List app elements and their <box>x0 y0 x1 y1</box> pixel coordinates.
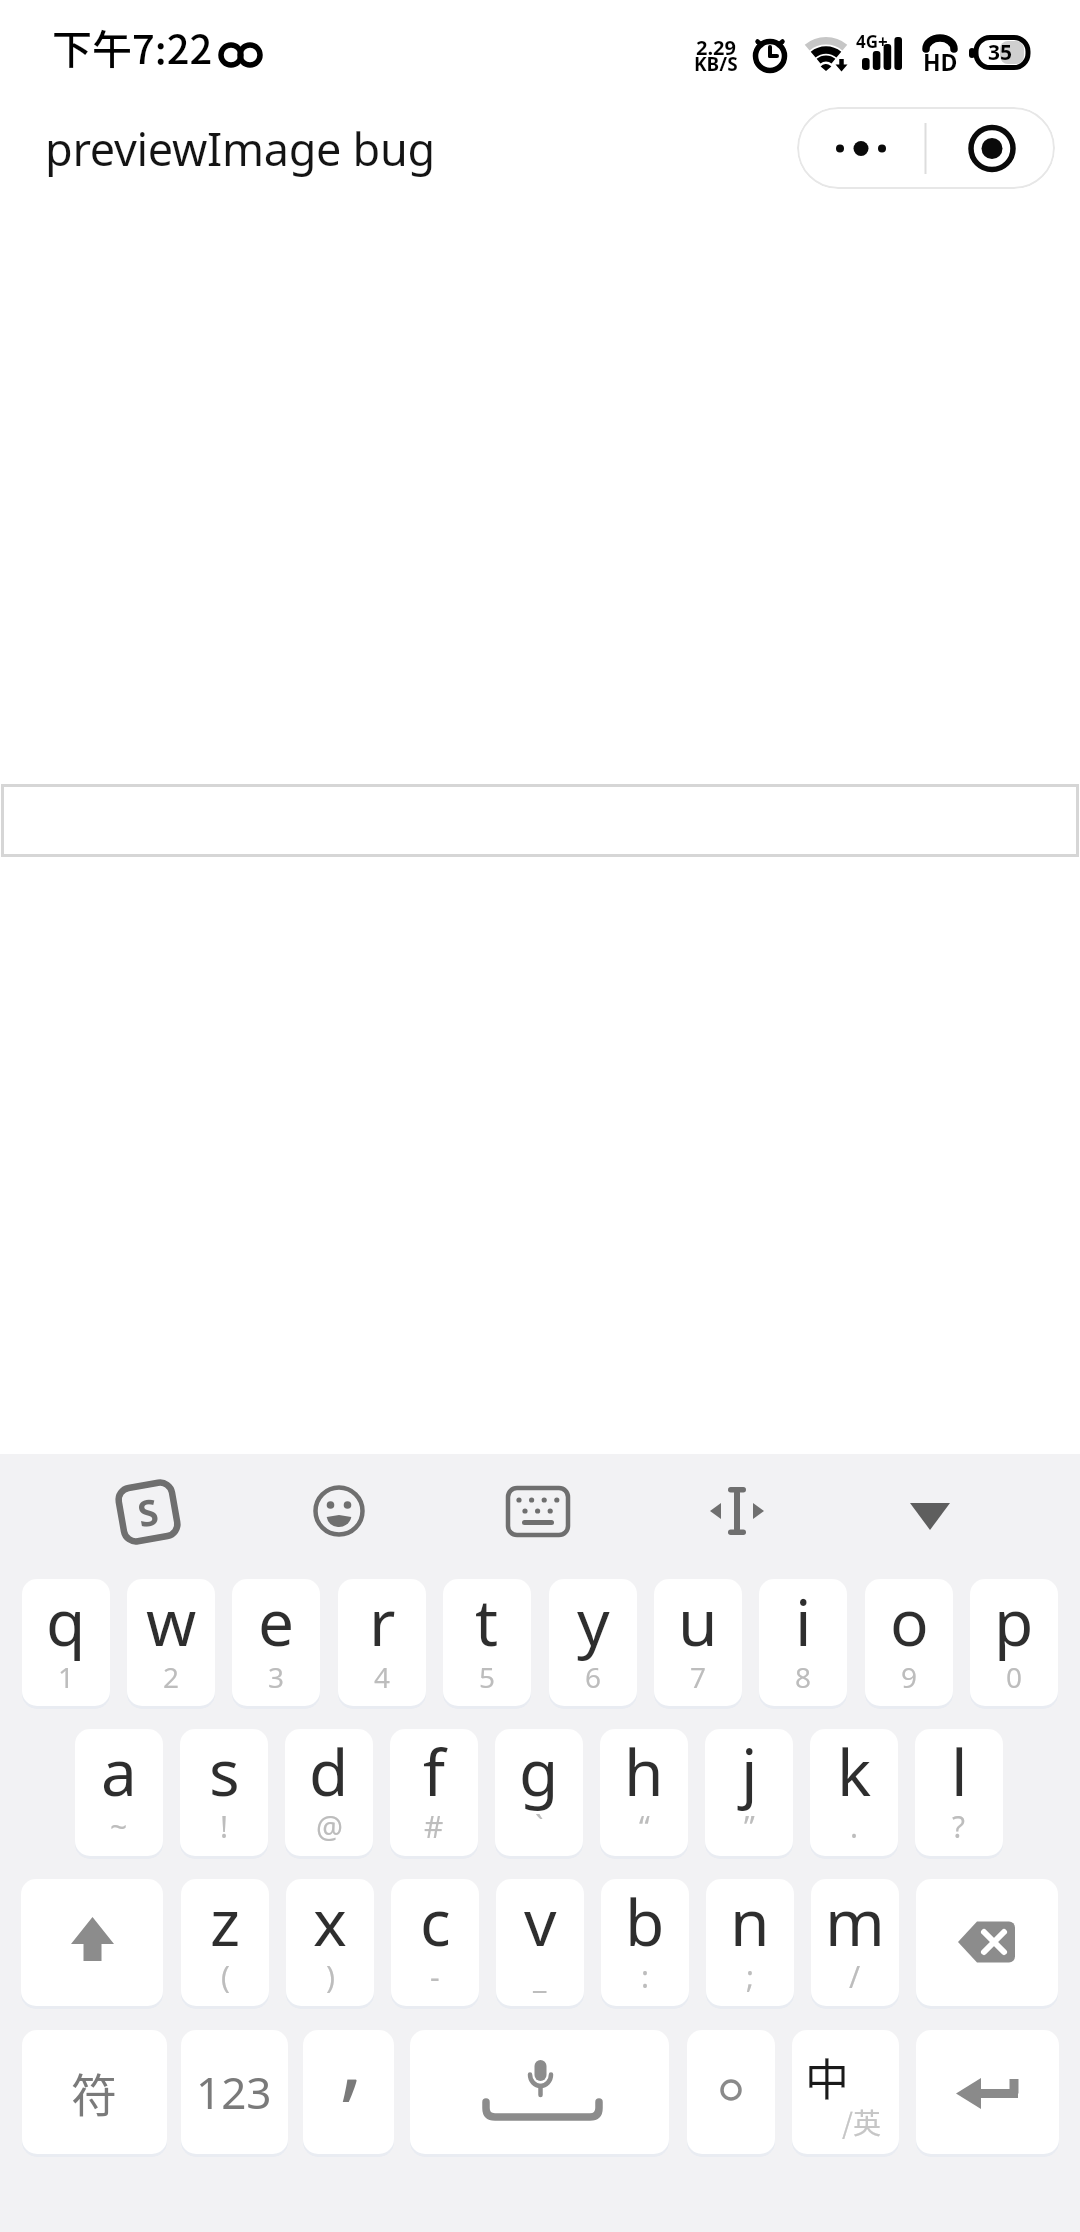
button[interactable]: r <box>338 1579 426 1706</box>
button[interactable]: s <box>180 1729 268 1856</box>
button[interactable] <box>916 1879 1058 2006</box>
button[interactable]: j <box>705 1729 793 1856</box>
button[interactable] <box>687 2030 775 2154</box>
staticText: o <box>890 1579 929 1665</box>
staticText: a <box>101 1729 137 1815</box>
staticText: 4G+ <box>856 30 888 53</box>
button[interactable] <box>792 2030 899 2154</box>
staticText: w <box>146 1579 197 1665</box>
button[interactable]: o <box>865 1579 953 1706</box>
button[interactable]: u <box>654 1579 742 1706</box>
staticText: 下午7:22 <box>52 18 213 76</box>
staticText: 5 <box>479 1658 496 1696</box>
staticText: u <box>678 1579 718 1665</box>
staticText: l <box>951 1729 968 1815</box>
button[interactable] <box>493 1467 583 1557</box>
staticText: d <box>309 1729 349 1815</box>
button[interactable] <box>21 1879 163 2006</box>
button[interactable]: p <box>970 1579 1058 1706</box>
staticText: 7 <box>690 1658 707 1696</box>
staticText: 35 <box>988 38 1013 67</box>
staticText: m <box>825 1879 885 1965</box>
button[interactable] <box>692 1467 782 1557</box>
staticText: i <box>795 1579 812 1665</box>
staticText: ( <box>221 1956 230 1997</box>
staticText: 0 <box>1006 1658 1023 1696</box>
button[interactable] <box>797 107 926 189</box>
staticText: ; <box>746 1956 755 1997</box>
staticText: 1 <box>58 1658 75 1696</box>
button[interactable] <box>916 2030 1059 2154</box>
staticText: 6 <box>585 1658 602 1696</box>
staticText: 123 <box>196 2062 272 2122</box>
button[interactable] <box>181 2030 288 2154</box>
button[interactable]: l <box>915 1729 1003 1856</box>
button[interactable]: m <box>811 1879 899 2006</box>
button[interactable]: y <box>549 1579 637 1706</box>
staticText: 8 <box>795 1658 812 1696</box>
staticText: c <box>420 1879 451 1965</box>
staticText: t <box>475 1579 499 1665</box>
staticText: : <box>641 1956 650 1997</box>
staticText: / <box>849 1956 861 1997</box>
button[interactable] <box>22 2030 167 2154</box>
staticText: ? <box>952 1806 966 1847</box>
button[interactable] <box>885 1467 975 1557</box>
button[interactable]: z <box>181 1879 269 2006</box>
button[interactable] <box>1 784 1079 857</box>
button[interactable]: a <box>75 1729 163 1856</box>
staticText: 中 <box>805 2045 849 2109</box>
staticText: g <box>519 1729 559 1815</box>
staticText: y <box>577 1579 610 1665</box>
staticText: v <box>524 1879 557 1965</box>
staticText: , <box>339 1992 364 2117</box>
button[interactable]: f <box>390 1729 478 1856</box>
staticText: p <box>994 1579 1034 1665</box>
button[interactable]: b <box>601 1879 689 2006</box>
button[interactable]: e <box>232 1579 320 1706</box>
staticText: n <box>730 1879 770 1965</box>
staticText: z <box>210 1879 241 1965</box>
staticText: ~ <box>110 1806 128 1847</box>
staticText: 4 <box>374 1658 391 1696</box>
button[interactable]: q <box>22 1579 110 1706</box>
staticText: HD <box>923 46 958 77</box>
staticText: e <box>258 1579 295 1665</box>
staticText: q <box>46 1579 86 1665</box>
button[interactable]: g <box>495 1729 583 1856</box>
staticText: h <box>624 1729 664 1815</box>
staticText: /英 <box>842 2102 881 2143</box>
button[interactable]: w <box>127 1579 215 1706</box>
staticText: f <box>423 1729 446 1815</box>
staticText: KB/S <box>694 51 738 77</box>
button[interactable]: x <box>286 1879 374 2006</box>
staticText: s <box>209 1729 240 1815</box>
staticText: - <box>430 1956 440 1997</box>
staticText: “ <box>639 1806 650 1847</box>
staticText: @ <box>316 1806 343 1847</box>
staticText: j <box>741 1729 758 1815</box>
button[interactable]: i <box>759 1579 847 1706</box>
staticText: 2.29 <box>696 34 736 61</box>
button[interactable]: c <box>391 1879 479 2006</box>
staticText: ` <box>535 1806 544 1847</box>
staticText: ” <box>744 1806 755 1847</box>
button[interactable]: d <box>285 1729 373 1856</box>
button[interactable] <box>303 2030 394 2154</box>
button[interactable]: t <box>443 1579 531 1706</box>
staticText: 符 <box>71 2059 117 2126</box>
button[interactable]: v <box>496 1879 584 2006</box>
staticText: 3 <box>268 1658 285 1696</box>
button[interactable] <box>410 2030 669 2154</box>
button[interactable] <box>294 1467 384 1557</box>
staticText: # <box>424 1806 444 1847</box>
button[interactable]: k <box>810 1729 898 1856</box>
staticText: r <box>369 1579 396 1665</box>
button[interactable] <box>103 1467 193 1557</box>
staticText: b <box>625 1879 665 1965</box>
button[interactable]: h <box>600 1729 688 1856</box>
staticText: previewImage bug <box>45 118 435 179</box>
staticText: _ <box>533 1956 547 1997</box>
button[interactable] <box>926 107 1055 189</box>
button[interactable]: n <box>706 1879 794 2006</box>
